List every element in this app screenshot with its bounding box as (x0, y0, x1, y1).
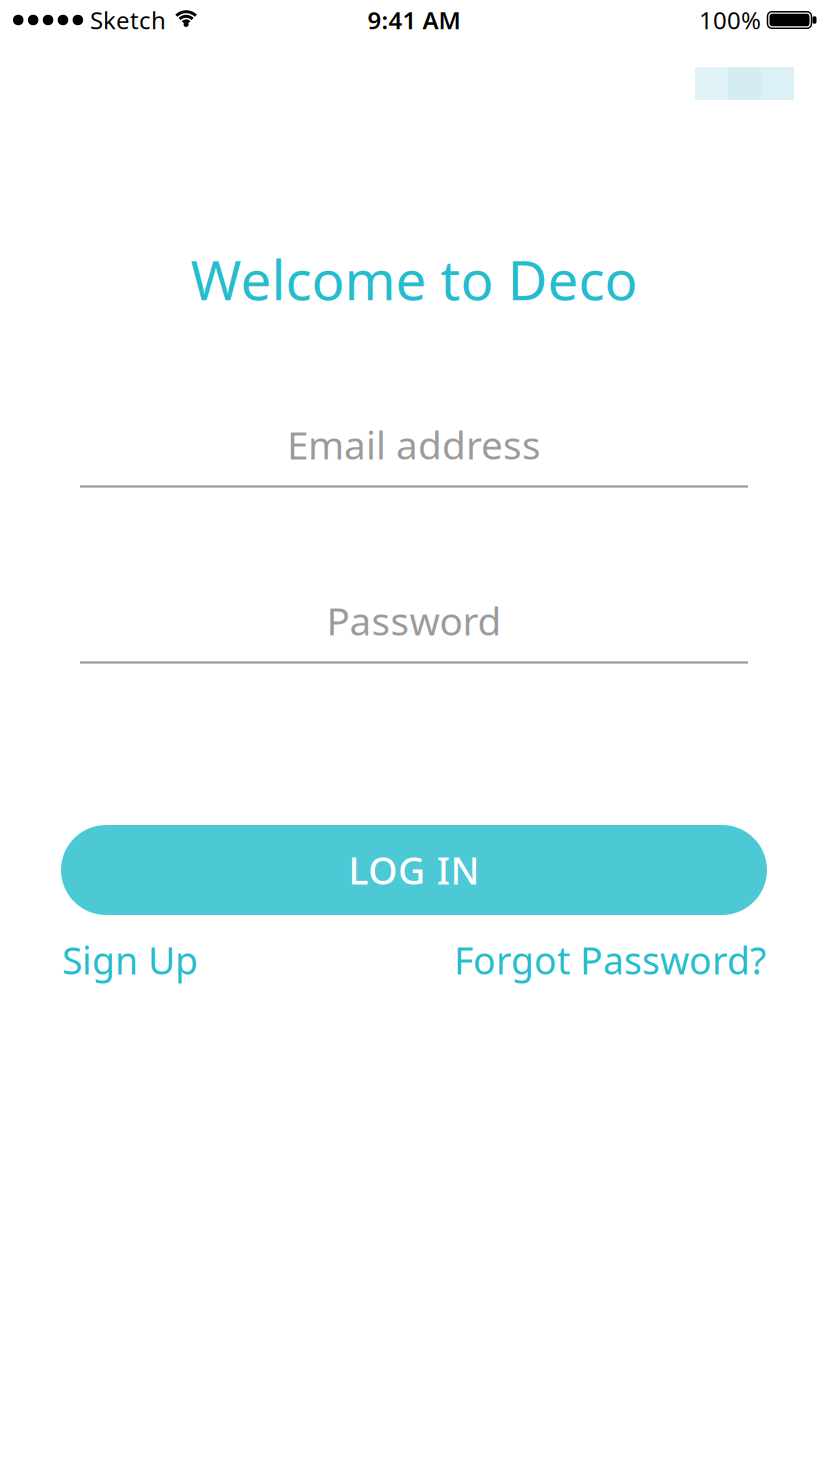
staticText: Sketch (90, 4, 166, 36)
button[interactable]: Password (80, 580, 748, 662)
staticText: 100% (699, 4, 761, 36)
button[interactable]: LOG IN (61, 825, 767, 915)
button[interactable]: Email address (80, 404, 748, 486)
staticText: Password (326, 595, 501, 646)
staticText: 9:41 AM (367, 4, 460, 36)
button[interactable]: Forgot Password? (454, 935, 766, 985)
staticText: Welcome to Deco (190, 243, 637, 315)
staticText: LOG IN (348, 845, 479, 895)
staticText: Sign Up (62, 935, 198, 985)
button[interactable]: Sign Up (62, 935, 198, 985)
staticText: Forgot Password? (454, 935, 766, 985)
staticText: Email address (287, 419, 541, 470)
